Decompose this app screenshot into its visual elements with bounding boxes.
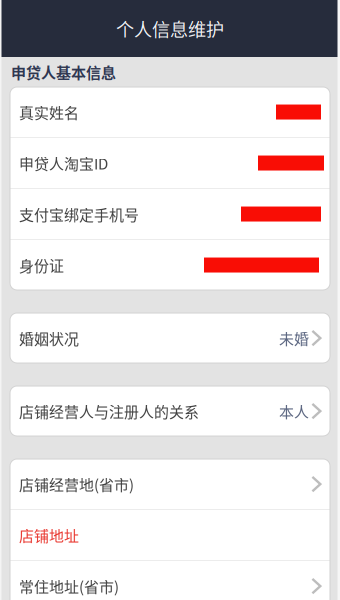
staticText: 支付宝绑定手机号: [19, 203, 139, 225]
staticText: 身份证: [19, 254, 64, 276]
staticText: 未婚: [279, 327, 309, 349]
staticText: 申贷人基本信息: [11, 61, 116, 83]
button[interactable]: 真实姓名: [10, 87, 330, 137]
button[interactable]: 支付宝绑定手机号: [10, 189, 330, 239]
button[interactable]: 店铺经营人与注册人的关系: [10, 386, 330, 436]
button[interactable]: 申贷人淘宝ID: [10, 138, 330, 188]
button[interactable]: 身份证: [10, 240, 330, 290]
staticText: 婚姻状况: [19, 327, 79, 349]
staticText: 申贷人淘宝ID: [19, 152, 108, 174]
staticText: 真实姓名: [19, 101, 79, 123]
button[interactable]: 常住地址(省市): [10, 561, 330, 600]
staticText: 本人: [279, 400, 309, 422]
staticText: 常住地址(省市): [19, 575, 119, 597]
staticText: 店铺经营人与注册人的关系: [19, 400, 199, 422]
staticText: 个人信息维护: [116, 15, 224, 42]
staticText: 店铺经营地(省市): [19, 473, 134, 495]
button[interactable]: 店铺经营地(省市): [10, 459, 330, 509]
button[interactable]: 婚姻状况: [10, 313, 330, 363]
staticText: 店铺地址: [19, 524, 79, 546]
button[interactable]: 店铺地址: [10, 510, 330, 560]
